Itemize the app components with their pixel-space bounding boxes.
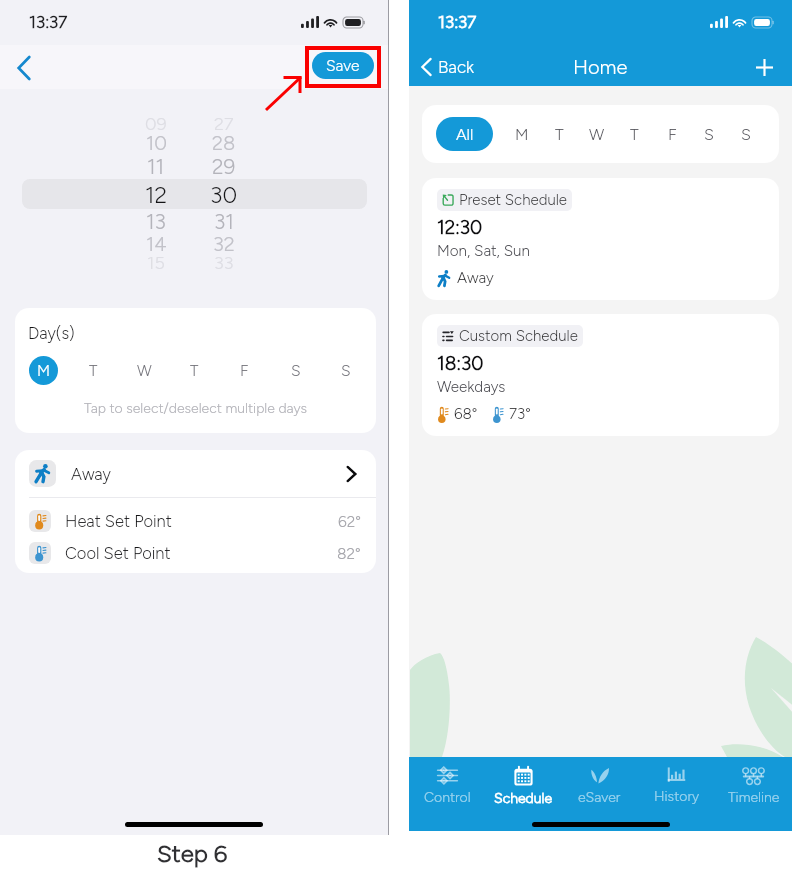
staticText: Weekdays <box>437 378 506 396</box>
staticText: Away <box>71 464 111 484</box>
button[interactable]: Timeline <box>715 757 792 805</box>
staticText: 62° <box>338 512 361 531</box>
staticText: M <box>515 125 529 144</box>
staticText: 12:30 <box>437 216 483 239</box>
staticText: 13:37 <box>29 12 68 32</box>
staticText: 29 <box>212 154 236 179</box>
button[interactable]: Heat Set Point <box>15 505 376 537</box>
button[interactable]: History <box>638 757 715 805</box>
button[interactable]: M <box>29 356 58 385</box>
staticText: Timeline <box>728 789 780 805</box>
staticText: All <box>456 125 474 144</box>
button[interactable]: Add <box>750 53 778 81</box>
staticText: Schedule <box>494 790 552 805</box>
staticText: Back <box>438 57 474 77</box>
button[interactable]: Schedule <box>485 757 561 805</box>
staticText: T <box>190 361 199 380</box>
staticText: M <box>37 361 51 380</box>
button[interactable]: S <box>729 117 763 151</box>
staticText: 73° <box>509 405 531 423</box>
button[interactable]: Back <box>416 52 479 82</box>
button[interactable]: Custom Schedule <box>422 314 779 436</box>
button[interactable]: T <box>79 356 108 385</box>
button[interactable]: All <box>436 117 493 151</box>
staticText: Day(s) <box>28 323 75 343</box>
button[interactable]: W <box>580 117 614 151</box>
staticText: Preset Schedule <box>459 191 567 209</box>
staticText: 12 <box>145 181 168 209</box>
staticText: 13 <box>146 209 166 234</box>
staticText: eSaver <box>578 789 621 805</box>
button[interactable]: T <box>180 356 209 385</box>
staticText: S <box>704 125 714 144</box>
staticText: 31 <box>214 209 234 234</box>
button[interactable]: eSaver <box>561 757 638 805</box>
staticText: 68° <box>454 405 478 423</box>
button[interactable]: Control <box>409 757 485 805</box>
staticText: 30 <box>210 181 238 209</box>
button[interactable]: W <box>130 356 159 385</box>
button[interactable]: Cool Set Point <box>15 537 376 569</box>
button[interactable]: M <box>505 117 539 151</box>
button[interactable]: Preset Schedule <box>422 178 779 300</box>
staticText: F <box>240 361 249 380</box>
staticText: T <box>555 125 564 144</box>
button[interactable]: Away <box>15 450 376 497</box>
button[interactable]: F <box>230 356 259 385</box>
staticText: 27 <box>214 113 234 135</box>
staticText: Custom Schedule <box>459 327 578 345</box>
staticText: T <box>89 361 98 380</box>
staticText: 33 <box>214 252 234 274</box>
button[interactable]: F <box>655 117 689 151</box>
staticText: 09 <box>145 113 167 135</box>
staticText: S <box>341 361 351 380</box>
staticText: 28 <box>212 131 236 155</box>
staticText: Mon, Sat, Sun <box>437 242 530 260</box>
staticText: W <box>137 361 152 380</box>
staticText: Control <box>424 789 471 805</box>
button[interactable]: Save <box>312 52 374 79</box>
staticText: T <box>630 125 639 144</box>
button[interactable]: Back <box>6 50 42 86</box>
staticText: S <box>741 125 751 144</box>
staticText: Cool Set Point <box>65 543 171 563</box>
staticText: Away <box>457 269 494 287</box>
button[interactable]: T <box>542 117 576 151</box>
staticText: Heat Set Point <box>65 511 172 531</box>
staticText: 10 <box>146 131 167 155</box>
staticText: History <box>654 788 699 805</box>
staticText: W <box>589 125 605 144</box>
button[interactable]: T <box>617 117 651 151</box>
staticText: 18:30 <box>437 352 484 375</box>
staticText: Home <box>573 55 628 79</box>
staticText: Step 6 <box>157 839 228 868</box>
staticText: S <box>291 361 301 380</box>
staticText: Tap to select/deselect multiple days <box>84 400 308 417</box>
button[interactable]: S <box>281 356 310 385</box>
button[interactable]: S <box>331 356 360 385</box>
staticText: 32 <box>213 232 235 256</box>
staticText: 82° <box>337 544 361 563</box>
staticText: 13:37 <box>438 12 477 32</box>
staticText: 11 <box>147 154 165 179</box>
button[interactable]: S <box>692 117 726 151</box>
staticText: F <box>668 125 677 144</box>
staticText: Save <box>326 56 360 75</box>
staticText: 15 <box>147 252 165 274</box>
staticText: 14 <box>146 232 167 256</box>
